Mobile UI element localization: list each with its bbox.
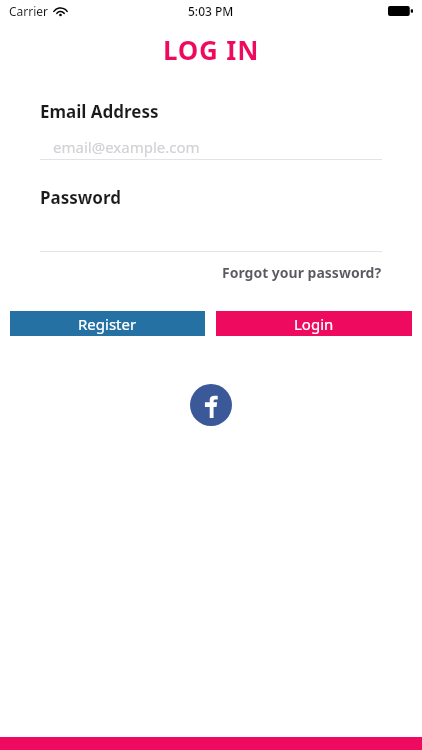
button[interactable]: Login bbox=[216, 311, 412, 336]
staticText: Register bbox=[78, 314, 137, 334]
button[interactable]: Forgot your password? bbox=[222, 263, 382, 282]
staticText: Email Address bbox=[40, 100, 159, 123]
staticText: Login bbox=[294, 314, 334, 334]
staticText: 5:03 PM bbox=[188, 3, 234, 19]
button[interactable]: Sign in with Facebook bbox=[190, 384, 232, 426]
staticText: LOG IN bbox=[0, 32, 422, 67]
button[interactable]: Register bbox=[10, 311, 205, 336]
button[interactable] bbox=[40, 226, 382, 252]
staticText: Password bbox=[40, 186, 121, 209]
staticText: Forgot your password? bbox=[222, 263, 382, 282]
button[interactable]: email@example.com bbox=[40, 134, 382, 160]
staticText: Carrier bbox=[9, 3, 49, 19]
staticText: email@example.com bbox=[53, 137, 200, 157]
